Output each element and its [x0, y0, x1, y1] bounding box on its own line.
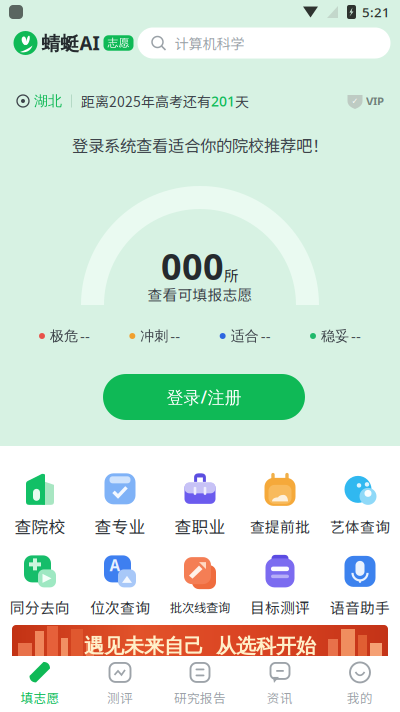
button[interactable]: 遇见未来自己 从选科开始 — [12, 625, 388, 667]
button[interactable]: 登录/注册 — [103, 374, 305, 420]
staticText: VIP — [366, 93, 384, 109]
staticText: 湖北 — [34, 92, 62, 110]
button[interactable]: 批次线查询 — [160, 553, 240, 619]
staticText: 艺体查询 — [330, 515, 390, 537]
staticText: 查院校 — [14, 514, 65, 538]
staticText: 遇见未来自己 从选科开始 — [84, 633, 316, 659]
staticText: 冲刺 — [140, 327, 168, 345]
button[interactable]: 艺体查询 — [320, 472, 400, 538]
staticText: -- — [80, 326, 90, 346]
staticText: 查专业 — [94, 514, 145, 538]
button[interactable]: 查院校 — [0, 472, 80, 538]
staticText: A — [109, 555, 120, 576]
staticText: 稳妥 — [321, 327, 349, 345]
button[interactable]: 查职业 — [160, 472, 240, 538]
button[interactable]: 语音助手 — [320, 553, 400, 619]
staticText: 位次查询 — [90, 596, 150, 618]
button[interactable]: 资讯 — [240, 656, 320, 712]
staticText: 查看可填报志愿 — [147, 283, 252, 305]
staticText: 计算机科学 — [174, 33, 244, 53]
staticText: 5:21 — [362, 3, 390, 21]
staticText: 批次线查询 — [170, 598, 230, 616]
button[interactable]: 查提前批 — [240, 472, 320, 538]
button[interactable]: 研究报告 — [160, 656, 240, 712]
button[interactable]: A — [80, 553, 160, 619]
staticText: 蜻蜓AI — [41, 30, 99, 56]
staticText: 天 — [235, 91, 249, 111]
staticText: 适合 — [231, 327, 259, 345]
staticText: 距离2025年高考还有 — [81, 91, 211, 111]
staticText: 语音助手 — [330, 596, 390, 618]
staticText: 研究报告 — [174, 688, 226, 706]
button[interactable]: 同分去向 — [0, 553, 80, 619]
staticText: 目标测评 — [250, 596, 310, 618]
staticText: -- — [351, 326, 361, 346]
staticText: ✓ — [351, 96, 358, 106]
button[interactable]: 查专业 — [80, 472, 160, 538]
staticText: 所 — [224, 264, 239, 286]
staticText: -- — [261, 326, 271, 346]
staticText: 登录/注册 — [166, 385, 241, 409]
staticText: -- — [170, 326, 180, 346]
button[interactable]: 填志愿 — [0, 656, 80, 712]
button[interactable]: 测评 — [80, 656, 160, 712]
staticText: 201 — [211, 91, 235, 111]
staticText: 登录系统查看适合你的院校推荐吧！ — [72, 133, 328, 157]
staticText: 资讯 — [267, 688, 293, 706]
staticText: 000 — [161, 241, 224, 290]
staticText: 查职业 — [174, 514, 225, 538]
button[interactable]: 目标测评 — [240, 553, 320, 619]
staticText: 同分去向 — [10, 596, 70, 618]
button[interactable]: 我的 — [320, 656, 400, 712]
staticText: 填志愿 — [20, 688, 59, 706]
staticText: 测评 — [107, 688, 133, 706]
staticText: 查提前批 — [250, 515, 310, 537]
staticText: 志愿 — [107, 36, 129, 50]
staticText: 我的 — [347, 688, 373, 706]
staticText: 极危 — [50, 327, 78, 345]
